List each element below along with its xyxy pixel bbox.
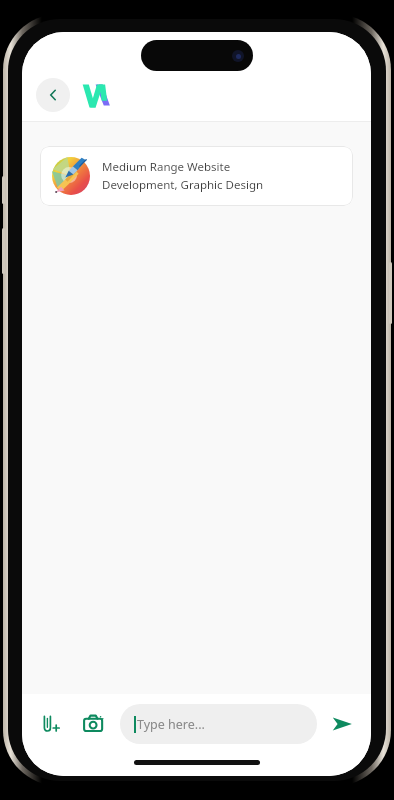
button[interactable]: Type here... — [120, 704, 317, 744]
button[interactable]: Attach file — [32, 706, 68, 742]
button[interactable]: Back — [36, 78, 70, 112]
button[interactable]: Logo — [82, 82, 116, 108]
button[interactable]: Camera — [76, 706, 112, 742]
button[interactable]: Send — [323, 705, 361, 743]
staticText: Development, Graphic Design — [102, 177, 264, 193]
staticText: Type here... — [137, 716, 205, 733]
button[interactable]: Medium Range Website — [40, 146, 353, 206]
staticText: Medium Range Website — [102, 159, 231, 175]
